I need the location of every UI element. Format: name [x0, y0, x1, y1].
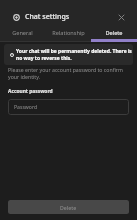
staticText: Delete [60, 204, 77, 211]
staticText: Chat settings [25, 12, 70, 22]
staticText: Password [14, 104, 38, 111]
staticText: Account password [8, 88, 53, 95]
button[interactable]: Delete [8, 200, 129, 214]
staticText: Your chat will be permanently deleted. T… [16, 48, 132, 61]
button[interactable]: Relationship [45, 28, 91, 42]
staticText: Relationship [52, 29, 85, 37]
button[interactable]: Settings [11, 12, 22, 23]
button[interactable]: Delete [91, 28, 137, 42]
staticText: Delete [105, 29, 123, 37]
button[interactable]: General [0, 28, 45, 42]
staticText: General [12, 29, 33, 37]
button[interactable]: Close [115, 11, 127, 23]
staticText: Please enter your account password to co… [8, 66, 129, 81]
button[interactable]: Password [8, 99, 129, 115]
